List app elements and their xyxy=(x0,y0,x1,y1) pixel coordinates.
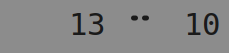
staticText: 10 xyxy=(184,7,220,42)
staticText: 13 xyxy=(69,7,105,42)
